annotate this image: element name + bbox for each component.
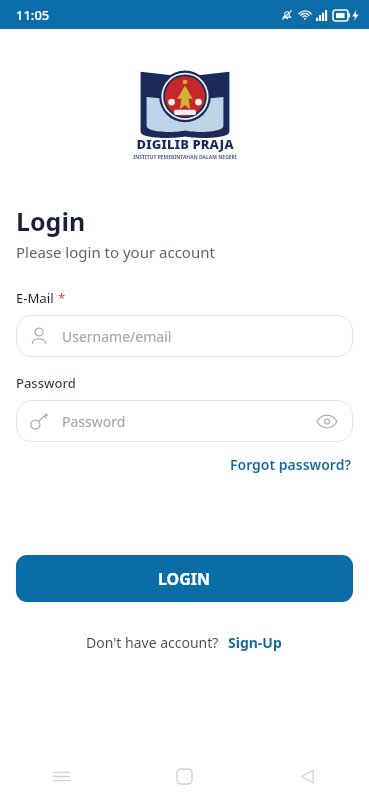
staticText: Username/email — [62, 327, 339, 346]
button[interactable]: Recents — [0, 752, 123, 800]
button[interactable]: LOGIN — [16, 555, 353, 602]
staticText: Sign-Up — [228, 633, 282, 652]
staticText: Forgot password? — [230, 455, 351, 474]
staticText: 11:05 — [16, 6, 50, 24]
button[interactable]: Password — [16, 400, 353, 442]
staticText: Don't have account? — [86, 633, 219, 652]
staticText: Login — [16, 204, 86, 238]
staticText: DIGILIB PRAJA — [136, 135, 234, 153]
staticText: Please login to your account — [16, 242, 215, 262]
button[interactable]: Show password — [315, 409, 339, 433]
staticText: Password — [62, 412, 315, 431]
staticText: LOGIN — [158, 568, 211, 590]
staticText: Password — [16, 374, 76, 392]
staticText: INSTITUT PEMERINTAHAN DALAM NEGERI — [133, 154, 237, 161]
button[interactable]: Back — [246, 752, 369, 800]
button[interactable]: Username/email — [16, 315, 353, 357]
button[interactable]: Forgot password? — [228, 452, 353, 477]
staticText: * — [58, 289, 66, 307]
staticText: E-Mail — [16, 289, 54, 307]
button[interactable]: Sign-Up — [226, 630, 284, 655]
button[interactable]: Home — [123, 752, 246, 800]
